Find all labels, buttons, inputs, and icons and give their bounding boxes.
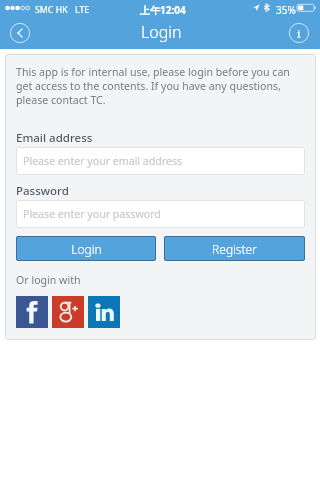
button[interactable]: Login with Facebook [16,296,48,328]
staticText: This app is for internal use, please log… [16,65,305,107]
button[interactable]: Back [6,19,34,47]
staticText: Login [141,21,182,43]
staticText: SMC HK [35,4,68,16]
staticText: Or login with [16,273,81,287]
staticText: Register [212,241,257,257]
staticText: Email address [16,130,93,146]
staticText: 35% [276,3,296,17]
button[interactable]: Please enter your password [16,200,305,228]
button[interactable]: Login [16,236,156,261]
button[interactable]: Register [164,236,305,261]
button[interactable]: Please enter your email address [16,147,305,175]
button[interactable]: Login with LinkedIn [88,296,120,328]
staticText: Login [71,241,102,257]
staticText: Please enter your email address [23,154,183,168]
staticText: LTE [75,4,90,16]
button[interactable]: Information [285,19,313,47]
staticText: Please enter your password [23,207,161,221]
staticText: i [297,26,301,41]
button[interactable]: Login with Google Plus [52,296,84,328]
staticText: 上午12:04 [140,3,186,17]
staticText: Password [16,183,69,199]
